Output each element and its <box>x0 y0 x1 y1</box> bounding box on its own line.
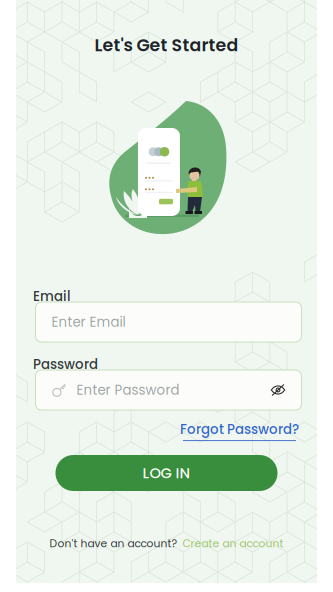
button[interactable]: Create an account <box>182 536 283 551</box>
staticText: Let's Get Started <box>94 33 238 57</box>
staticText: Enter Email <box>51 313 125 331</box>
staticText: LOG IN <box>142 463 190 483</box>
staticText: Don't have an account? <box>49 536 177 551</box>
staticText: Password <box>33 355 98 374</box>
button[interactable]: Forgot Password? <box>180 420 299 441</box>
staticText: Email <box>33 287 71 306</box>
button[interactable]: LOG IN <box>55 455 277 491</box>
staticText: Enter Password <box>76 381 179 399</box>
staticText: Forgot Password? <box>180 420 299 439</box>
staticText: Create an account <box>182 536 283 551</box>
button[interactable]: Show password <box>270 384 285 396</box>
